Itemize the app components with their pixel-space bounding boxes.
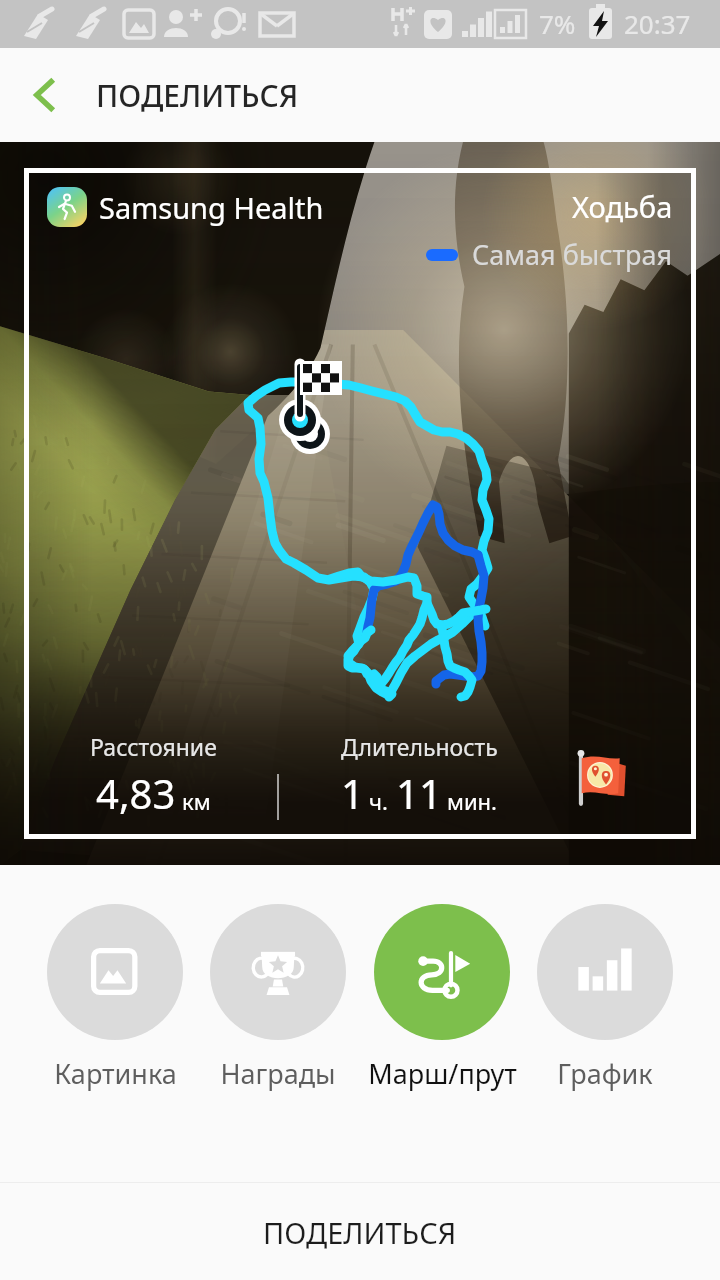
staticText: 1 <box>341 766 364 820</box>
staticText: Награды <box>220 1055 336 1092</box>
staticText: ч. <box>369 786 388 816</box>
button[interactable]: Награды <box>203 904 353 1092</box>
staticText: 11 <box>396 766 442 820</box>
button[interactable]: Картинка <box>40 904 190 1092</box>
staticText: 4,83 <box>96 766 176 820</box>
staticText: Самая быстрая <box>472 236 673 273</box>
button[interactable]: Back <box>12 63 76 127</box>
staticText: Картинка <box>54 1055 177 1092</box>
staticText: Длительность <box>341 731 498 762</box>
staticText: Ходьба <box>572 187 673 226</box>
staticText: График <box>557 1055 653 1092</box>
staticText: км <box>182 786 211 816</box>
staticText: Samsung Health <box>99 188 324 227</box>
staticText: ПОДЕЛИТЬСЯ <box>263 1213 457 1252</box>
button[interactable]: Марш/прут <box>367 904 517 1092</box>
staticText: Расстояние <box>90 731 217 762</box>
button[interactable]: График <box>530 904 680 1092</box>
button[interactable]: ПОДЕЛИТЬСЯ <box>0 1183 720 1280</box>
staticText: Марш/прут <box>368 1055 517 1092</box>
staticText: ПОДЕЛИТЬСЯ <box>96 75 299 116</box>
staticText: 20:37 <box>624 6 691 41</box>
staticText: 7% <box>539 6 576 41</box>
staticText: мин. <box>447 786 497 816</box>
